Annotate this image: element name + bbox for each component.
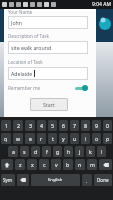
staticText: 1 (5, 122, 8, 129)
button[interactable]: site walk around (8, 41, 88, 54)
button[interactable]: Adelaide (8, 67, 88, 80)
staticText: English (48, 177, 63, 183)
staticText: Sym (3, 177, 13, 183)
staticText: 8 (84, 122, 87, 129)
staticText: 7 (73, 122, 76, 129)
button[interactable]: c (39, 159, 49, 170)
button[interactable]: 5 (48, 120, 57, 131)
staticText: i (85, 135, 87, 142)
button[interactable]: Remember me toggle (75, 84, 88, 92)
button[interactable]: o (92, 133, 101, 144)
staticText: c (43, 161, 46, 168)
button[interactable]: b (63, 159, 73, 170)
staticText: 9 (95, 122, 98, 129)
button[interactable]: Shift (1, 159, 13, 170)
button[interactable]: f (42, 146, 51, 157)
staticText: e (29, 135, 32, 142)
staticText: n (78, 161, 82, 168)
staticText: 9:04 AM (92, 1, 111, 8)
button[interactable]: 1 (1, 120, 11, 131)
button[interactable]: g (53, 146, 62, 157)
button[interactable]: 6 (59, 120, 68, 131)
staticText: z (19, 161, 22, 168)
button[interactable]: Start (30, 98, 68, 111)
button[interactable]: 8 (81, 120, 90, 131)
staticText: Your Name (8, 9, 33, 15)
staticText: Adelaide (11, 70, 33, 77)
button[interactable]: Remember me (8, 84, 88, 92)
staticText: x (31, 161, 34, 168)
staticText: Remember me (8, 85, 41, 91)
staticText: John (11, 19, 22, 26)
staticText: 4 (40, 122, 43, 129)
staticText: Location of Task (8, 59, 43, 65)
staticText: p (106, 135, 110, 142)
staticText: Start (43, 101, 55, 108)
staticText: w (16, 135, 21, 142)
staticText: u (73, 135, 77, 142)
button[interactable]: a (8, 146, 18, 157)
button[interactable]: 7 (70, 120, 79, 131)
button[interactable]: p (103, 133, 112, 144)
button[interactable]: q (1, 133, 11, 144)
staticText: 5 (51, 122, 54, 129)
staticText: j (79, 148, 81, 155)
button[interactable]: 9 (92, 120, 101, 131)
staticText: d (34, 148, 38, 155)
staticText: 2 (17, 122, 20, 129)
button[interactable]: y (59, 133, 68, 144)
button[interactable]: 2 (13, 120, 23, 131)
staticText: r (40, 135, 43, 142)
button[interactable]: Backspace (99, 159, 112, 170)
button[interactable]: w (13, 133, 23, 144)
button[interactable]: e (25, 133, 35, 144)
staticText: m (90, 161, 95, 168)
staticText: h (67, 148, 71, 155)
staticText: . (86, 177, 88, 184)
button[interactable]: John (8, 16, 88, 29)
staticText: 6 (62, 122, 65, 129)
staticText: 3 (29, 122, 32, 129)
button[interactable]: l (97, 146, 106, 157)
staticText: k (89, 148, 92, 155)
button[interactable]: Sym (1, 174, 15, 186)
button[interactable]: k (86, 146, 95, 157)
button[interactable]: 0 (103, 120, 112, 131)
staticText: l (101, 148, 103, 155)
staticText: g (56, 148, 60, 155)
button[interactable]: English (31, 174, 80, 186)
staticText: q (4, 135, 8, 142)
staticText: t (52, 135, 54, 142)
button[interactable]: Next input method (17, 174, 29, 186)
staticText: y (62, 135, 65, 142)
button[interactable]: u (70, 133, 79, 144)
button[interactable]: j (75, 146, 84, 157)
staticText: Done (97, 177, 109, 183)
button[interactable]: Done (94, 174, 112, 186)
staticText: o (95, 135, 99, 142)
button[interactable]: i (81, 133, 90, 144)
button[interactable]: d (31, 146, 40, 157)
staticText: v (55, 161, 58, 168)
button[interactable]: n (75, 159, 85, 170)
button[interactable]: h (64, 146, 73, 157)
button[interactable]: s (20, 146, 29, 157)
button[interactable]: z (15, 159, 25, 170)
button[interactable]: v (51, 159, 61, 170)
staticText: b (66, 161, 70, 168)
button[interactable]: 3 (25, 120, 35, 131)
staticText: Description of Task (8, 33, 49, 39)
staticText: 0 (106, 122, 109, 129)
button[interactable]: x (27, 159, 37, 170)
staticText: f (46, 148, 48, 155)
button[interactable]: r (37, 133, 46, 144)
staticText: site walk around (11, 44, 52, 51)
staticText: s (23, 148, 26, 155)
button[interactable]: 4 (37, 120, 46, 131)
button[interactable]: . (82, 174, 92, 186)
button[interactable]: t (48, 133, 57, 144)
staticText: a (12, 148, 15, 155)
button[interactable]: m (87, 159, 97, 170)
